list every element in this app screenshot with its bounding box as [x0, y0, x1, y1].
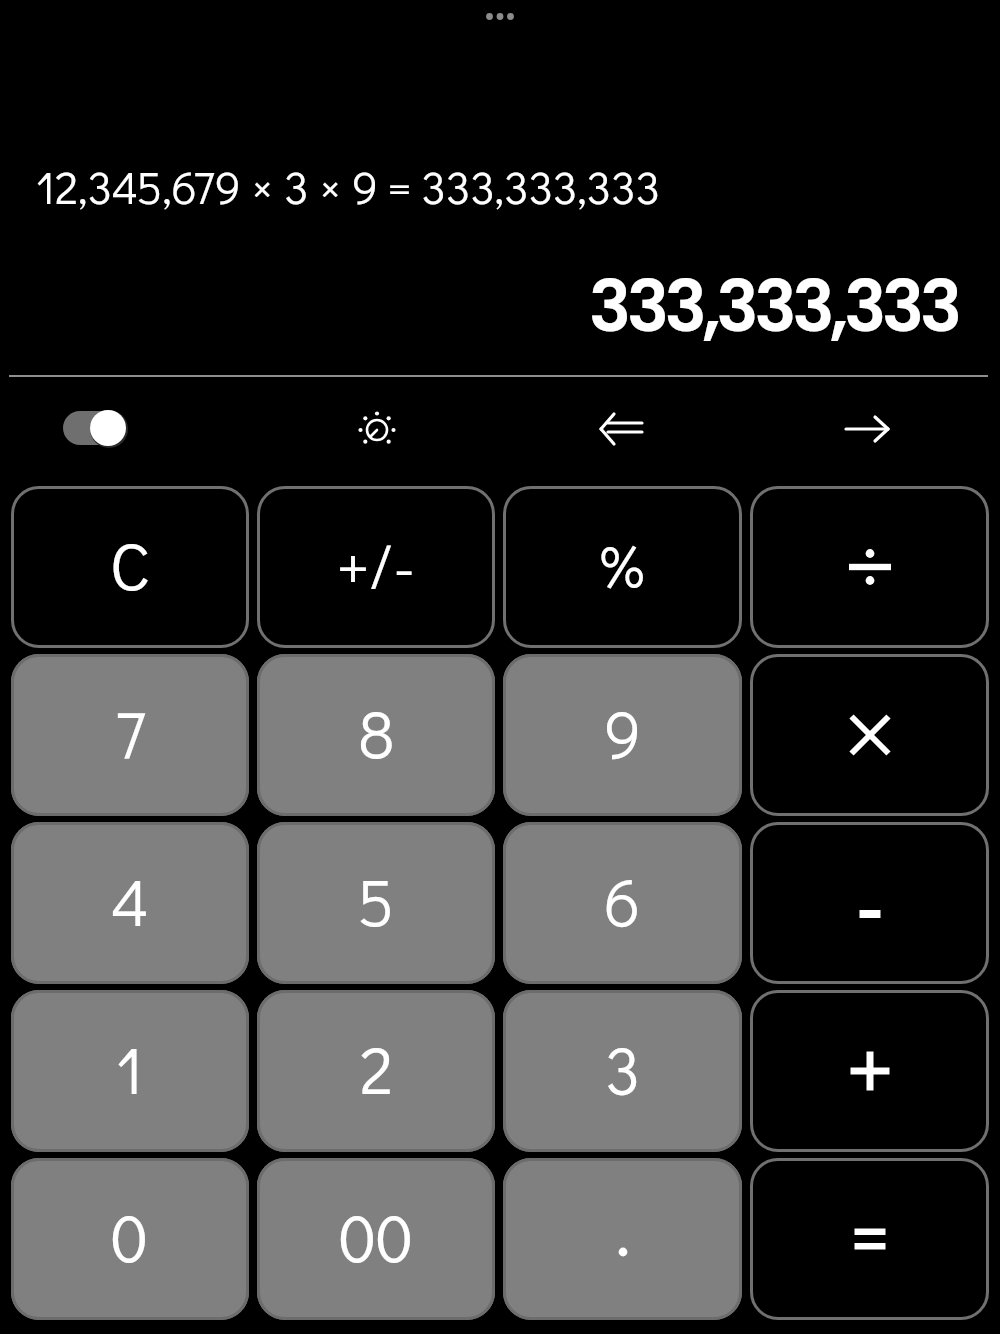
button[interactable]	[750, 822, 989, 984]
button[interactable]	[356, 409, 398, 451]
button[interactable]: +/-	[257, 486, 495, 648]
button[interactable]	[59, 408, 131, 448]
staticText: 00	[339, 1193, 414, 1280]
button[interactable]	[750, 1158, 989, 1320]
staticText: 3	[605, 1025, 641, 1112]
button[interactable]: %	[503, 486, 742, 648]
staticText: 333,333,333	[589, 257, 958, 355]
button[interactable]: 8	[257, 654, 495, 816]
staticText: 12,345,679 × 3 × 9 = 333,333,333	[36, 156, 660, 216]
button[interactable]: 6	[503, 822, 742, 984]
button[interactable]: C	[11, 486, 249, 648]
staticText: +/-	[337, 522, 415, 606]
staticText: 2	[360, 1025, 393, 1112]
staticText: 1	[116, 1025, 144, 1112]
button[interactable]: 0	[11, 1158, 249, 1320]
button[interactable]	[840, 408, 894, 450]
staticText: 8	[358, 689, 395, 776]
staticText: 5	[357, 857, 395, 944]
staticText: 7	[115, 689, 146, 776]
button[interactable]: 5	[257, 822, 495, 984]
button[interactable]	[503, 1158, 742, 1320]
button[interactable]	[750, 990, 989, 1152]
button[interactable]: 2	[257, 990, 495, 1152]
staticText: 6	[604, 857, 641, 944]
button[interactable]	[750, 654, 989, 816]
staticText: 0	[111, 1193, 149, 1280]
button[interactable]: 00	[257, 1158, 495, 1320]
button[interactable]: 3	[503, 990, 742, 1152]
staticText: C	[110, 521, 150, 608]
button[interactable]: 7	[11, 654, 249, 816]
staticText: 4	[111, 857, 149, 944]
staticText: 9	[604, 689, 642, 776]
button[interactable]: 9	[503, 654, 742, 816]
button[interactable]: 1	[11, 990, 249, 1152]
button[interactable]	[596, 408, 646, 450]
button[interactable]	[750, 486, 989, 648]
button[interactable]: 4	[11, 822, 249, 984]
staticText: %	[600, 525, 645, 604]
